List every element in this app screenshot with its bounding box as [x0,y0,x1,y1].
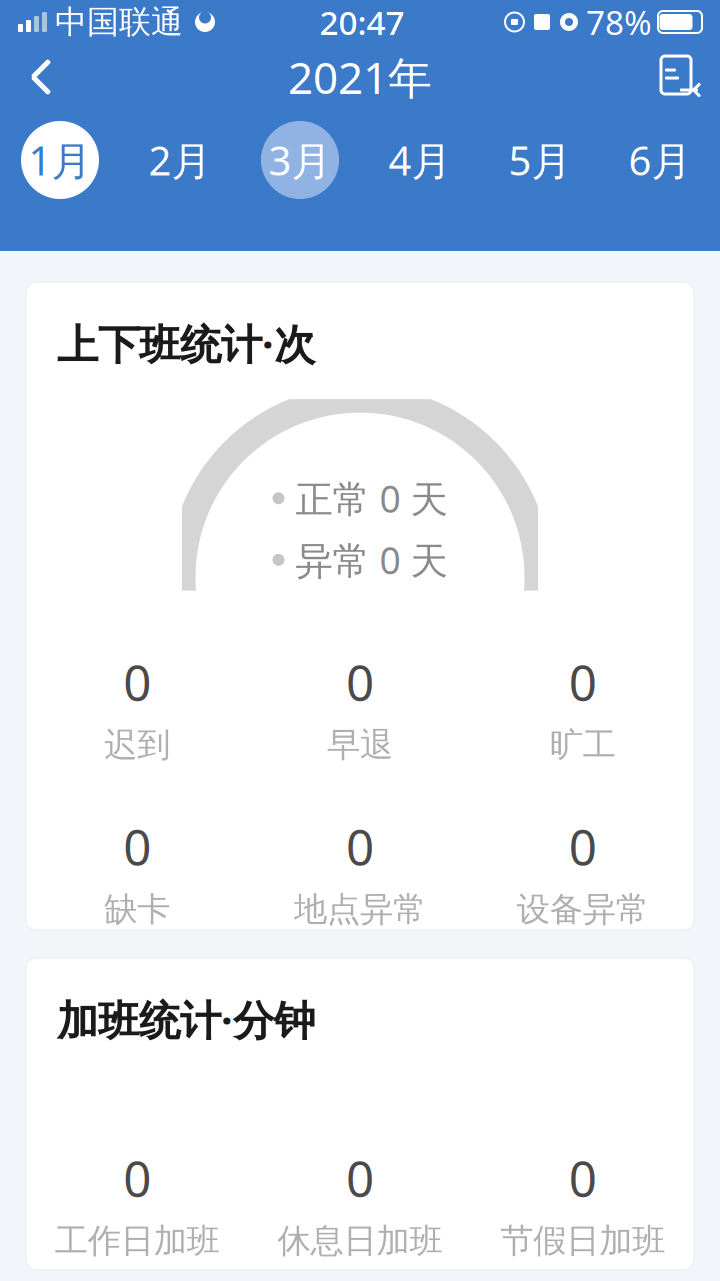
staticText: 设备异常 [517,889,649,930]
button[interactable]: 1月 [10,117,110,203]
staticText: 正常 0 天 [295,473,447,523]
staticText: 工作日加班 [55,1220,220,1261]
staticText: 休息日加班 [277,1220,442,1261]
staticText: 6月 [628,133,691,186]
staticText: 5月 [508,133,571,186]
staticText: 0 [123,1145,151,1210]
button[interactable]: 4月 [370,117,470,203]
staticText: 0 [346,649,374,714]
staticText: 20:47 [319,0,404,44]
staticText: 中国联通 [55,2,183,42]
staticText: 0 [569,1145,597,1210]
button[interactable]: Export [652,50,706,104]
staticText: 异常 0 天 [295,535,447,585]
button[interactable]: 3月 [250,117,350,203]
staticText: 3月 [268,133,331,186]
staticText: 0 [569,813,597,879]
staticText: 地点异常 [294,889,426,930]
button[interactable]: 2月 [130,117,230,203]
button[interactable]: 6月 [610,117,710,203]
staticText: 加班统计·分钟 [57,992,315,1047]
button[interactable]: 5月 [490,117,590,203]
staticText: 0 [123,649,151,714]
staticText: 早退 [327,724,393,765]
staticText: 78% [586,0,652,44]
staticText: 上下班统计·次 [57,316,315,371]
button[interactable]: Back [14,50,68,104]
staticText: 0 [346,813,374,879]
staticText: 1月 [28,133,91,186]
staticText: 0 [346,1145,374,1210]
staticText: 0 [569,649,597,714]
staticText: 2021年 [288,48,432,106]
staticText: 迟到 [104,724,170,765]
staticText: 节假日加班 [500,1220,665,1261]
staticText: 4月 [388,133,451,186]
staticText: 旷工 [550,724,616,765]
staticText: 2月 [148,133,211,186]
staticText: 缺卡 [104,889,170,930]
staticText: 0 [123,813,151,879]
